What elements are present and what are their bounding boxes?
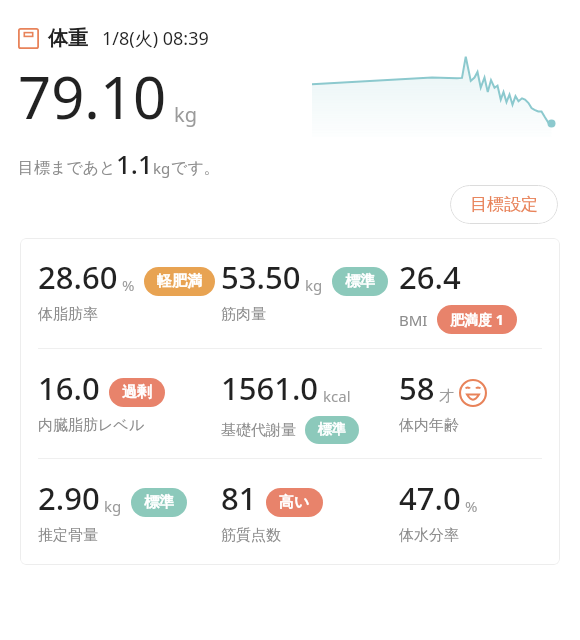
staticText: kg — [174, 101, 197, 128]
staticText: 標準 — [144, 493, 174, 512]
staticText: 47.0 — [399, 477, 461, 519]
staticText: 過剰 — [122, 383, 152, 402]
staticText: 標準 — [345, 272, 375, 291]
staticText: 81 — [221, 477, 257, 519]
staticText: % — [122, 275, 135, 295]
staticText: 79.10 — [18, 57, 167, 136]
staticText: 体脂肪率 — [38, 305, 98, 324]
staticText: 高い — [279, 493, 310, 512]
staticText: 肥満度 1 — [450, 310, 504, 329]
staticText: 体水分率 — [399, 526, 459, 545]
staticText: kcal — [323, 386, 351, 406]
staticText: 53.50 — [221, 256, 301, 298]
staticText: 才 — [439, 387, 454, 406]
button[interactable]: 目標設定 — [450, 185, 558, 224]
staticText: 体内年齢 — [399, 416, 459, 435]
staticText: 58 — [399, 367, 435, 409]
button[interactable]: 高い — [266, 488, 323, 517]
staticText: 基礎代謝量 — [221, 421, 296, 440]
staticText: kg — [153, 158, 171, 178]
button[interactable]: 過剰 — [109, 378, 165, 407]
staticText: 28.60 — [38, 256, 118, 298]
staticText: 筋肉量 — [221, 305, 266, 324]
staticText: kg — [104, 496, 122, 516]
staticText: 内臓脂肪レベル — [38, 416, 145, 435]
staticText: 16.0 — [38, 367, 100, 409]
staticText: 26.4 — [399, 256, 461, 298]
button[interactable]: 肥満度 1 — [437, 305, 517, 334]
button[interactable]: 標準 — [332, 267, 388, 296]
staticText: 目標設定 — [470, 194, 538, 215]
staticText: BMI — [399, 310, 428, 330]
button[interactable]: 軽肥満 — [144, 267, 215, 296]
staticText: 目標まであと — [18, 158, 116, 178]
staticText: 推定骨量 — [38, 526, 98, 545]
staticText: 筋質点数 — [221, 526, 281, 545]
staticText: 標準 — [318, 421, 346, 439]
button[interactable]: 標準 — [131, 488, 187, 517]
staticText: 1.1 — [116, 146, 153, 181]
staticText: 2.90 — [38, 477, 100, 519]
staticText: 体重 — [48, 26, 88, 51]
staticText: です。 — [171, 158, 220, 178]
staticText: kg — [305, 275, 323, 295]
staticText: 軽肥満 — [157, 272, 202, 291]
staticText: 1561.0 — [221, 367, 319, 409]
staticText: % — [465, 496, 478, 516]
staticText: 1/8(火) 08:39 — [102, 26, 209, 51]
button[interactable]: 標準 — [305, 416, 359, 444]
